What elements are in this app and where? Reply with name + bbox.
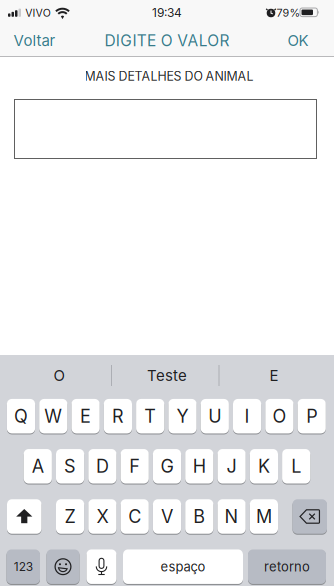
- staticText: W: [44, 405, 62, 427]
- button[interactable]: Emoji: [46, 549, 79, 584]
- button[interactable]: Y: [168, 398, 197, 434]
- staticText: Q: [14, 405, 28, 427]
- staticText: H: [193, 455, 206, 477]
- staticText: VIVO: [25, 7, 51, 19]
- button[interactable]: Q: [7, 398, 35, 434]
- staticText: L: [291, 455, 301, 477]
- staticText: Y: [176, 405, 188, 427]
- button[interactable]: B: [185, 499, 213, 534]
- staticText: R: [112, 405, 124, 427]
- button[interactable]: I: [233, 398, 261, 434]
- staticText: J: [227, 455, 237, 477]
- button[interactable]: X: [88, 499, 116, 534]
- staticText: U: [208, 405, 221, 427]
- staticText: O: [272, 405, 286, 427]
- staticText: E: [80, 405, 91, 427]
- button[interactable]: Mais detalhes do animal: [14, 99, 316, 158]
- staticText: MAIS DETALHES DO ANIMAL: [84, 69, 253, 84]
- staticText: Teste: [147, 366, 187, 384]
- button[interactable]: Shift: [7, 499, 41, 534]
- button[interactable]: W: [39, 398, 67, 434]
- button[interactable]: 123: [6, 549, 40, 584]
- staticText: I: [245, 405, 250, 427]
- staticText: C: [128, 506, 141, 527]
- staticText: D: [96, 455, 109, 477]
- button[interactable]: E: [71, 398, 100, 434]
- button[interactable]: Delete: [292, 499, 327, 534]
- button[interactable]: V: [153, 499, 181, 534]
- button[interactable]: O: [9, 355, 109, 395]
- staticText: V: [161, 506, 173, 527]
- staticText: F: [129, 455, 140, 477]
- staticText: N: [225, 506, 239, 527]
- button[interactable]: L: [282, 449, 310, 484]
- button[interactable]: E: [224, 355, 324, 395]
- button[interactable]: D: [88, 449, 116, 484]
- button[interactable]: Dictate: [86, 549, 116, 584]
- staticText: OK: [287, 31, 308, 49]
- button[interactable]: A: [24, 449, 52, 484]
- button[interactable]: K: [250, 449, 278, 484]
- staticText: X: [96, 506, 108, 527]
- staticText: 19:34: [152, 5, 182, 20]
- staticText: A: [32, 455, 44, 477]
- staticText: retorno: [264, 559, 310, 574]
- staticText: Z: [65, 506, 76, 527]
- staticText: O: [53, 366, 64, 384]
- button[interactable]: espaço: [123, 549, 243, 584]
- staticText: E: [269, 366, 278, 384]
- button[interactable]: O: [265, 398, 293, 434]
- button[interactable]: U: [201, 398, 229, 434]
- button[interactable]: P: [298, 398, 326, 434]
- staticText: P: [306, 405, 317, 427]
- button[interactable]: H: [185, 449, 213, 484]
- staticText: S: [64, 455, 76, 477]
- staticText: K: [258, 455, 270, 477]
- button[interactable]: J: [217, 449, 246, 484]
- staticText: 123: [14, 559, 33, 574]
- button[interactable]: N: [217, 499, 246, 534]
- button[interactable]: OK: [287, 31, 308, 49]
- staticText: G: [160, 455, 173, 477]
- button[interactable]: M: [250, 499, 278, 534]
- button[interactable]: R: [104, 398, 132, 434]
- button[interactable]: Z: [56, 499, 84, 534]
- button[interactable]: retorno: [248, 549, 326, 584]
- staticText: Voltar: [13, 31, 55, 49]
- staticText: M: [256, 506, 272, 527]
- staticText: espaço: [160, 559, 205, 574]
- staticText: 79%: [276, 6, 300, 19]
- button[interactable]: Voltar: [13, 31, 55, 49]
- staticText: B: [193, 506, 205, 527]
- button[interactable]: T: [136, 398, 164, 434]
- button[interactable]: G: [153, 449, 181, 484]
- button[interactable]: S: [56, 449, 84, 484]
- button[interactable]: C: [121, 499, 149, 534]
- staticText: DIGITE O VALOR: [105, 31, 229, 50]
- button[interactable]: Teste: [117, 355, 217, 395]
- button[interactable]: F: [121, 449, 149, 484]
- staticText: T: [144, 405, 156, 427]
